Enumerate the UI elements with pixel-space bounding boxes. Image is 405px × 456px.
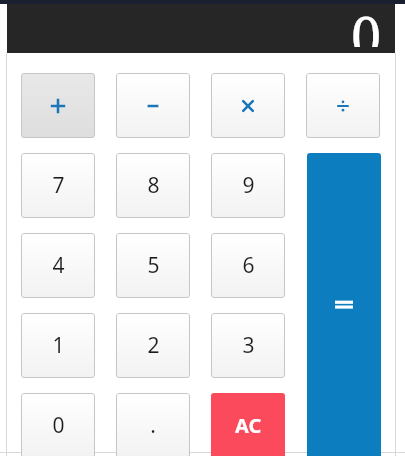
button[interactable]: 4 bbox=[21, 233, 95, 298]
staticText: 5 bbox=[147, 251, 160, 280]
button[interactable]: AC bbox=[211, 393, 285, 456]
button[interactable]: 9 bbox=[211, 153, 285, 218]
staticText: . bbox=[150, 411, 156, 440]
button[interactable]: Multiply bbox=[211, 73, 285, 138]
staticText: 2 bbox=[147, 331, 160, 360]
staticText: 7 bbox=[52, 171, 65, 200]
button[interactable]: Minus bbox=[116, 73, 190, 138]
staticText: 8 bbox=[147, 171, 160, 200]
button[interactable]: 7 bbox=[21, 153, 95, 218]
button[interactable]: Divide bbox=[306, 73, 380, 138]
button[interactable]: . bbox=[116, 393, 190, 456]
button[interactable]: 1 bbox=[21, 313, 95, 378]
button[interactable]: Equals bbox=[307, 153, 381, 456]
button[interactable]: 8 bbox=[116, 153, 190, 218]
button[interactable]: 0 bbox=[21, 393, 95, 456]
button[interactable]: 3 bbox=[211, 313, 285, 378]
staticText: 0 bbox=[351, 0, 382, 47]
staticText: 0 bbox=[52, 411, 65, 440]
button[interactable]: 5 bbox=[116, 233, 190, 298]
button[interactable]: 6 bbox=[211, 233, 285, 298]
button[interactable]: 2 bbox=[116, 313, 190, 378]
staticText: 1 bbox=[52, 331, 65, 360]
staticText: 6 bbox=[242, 251, 255, 280]
staticText: AC bbox=[235, 412, 262, 439]
staticText: 3 bbox=[242, 331, 255, 360]
staticText: 9 bbox=[242, 171, 255, 200]
button[interactable]: Plus bbox=[21, 73, 95, 138]
staticText: 4 bbox=[52, 251, 65, 280]
